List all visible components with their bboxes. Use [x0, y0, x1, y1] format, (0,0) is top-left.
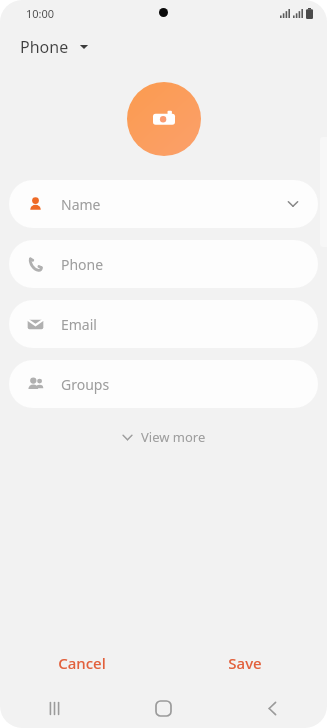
button[interactable]: Cancel [0, 638, 163, 688]
staticText: Name [61, 195, 101, 214]
button[interactable]: Phone [0, 26, 327, 68]
button[interactable]: Home [109, 688, 218, 728]
staticText: Email [61, 315, 97, 334]
button[interactable]: Phone [9, 240, 318, 288]
button[interactable]: View more [109, 422, 218, 452]
button[interactable]: Back [218, 688, 327, 728]
button[interactable]: Save [163, 638, 327, 688]
button[interactable]: Name [9, 180, 318, 228]
button[interactable]: Add photo [127, 82, 201, 156]
staticText: Groups [61, 375, 110, 394]
button[interactable]: Email [9, 300, 318, 348]
staticText: View more [141, 428, 206, 446]
staticText: Phone [20, 36, 69, 58]
staticText: Phone [61, 255, 104, 274]
button[interactable]: Groups [9, 360, 318, 408]
staticText: Save [228, 653, 262, 673]
staticText: Cancel [58, 653, 106, 673]
staticText: 10:00 [26, 6, 55, 21]
button[interactable]: Recents [0, 688, 109, 728]
